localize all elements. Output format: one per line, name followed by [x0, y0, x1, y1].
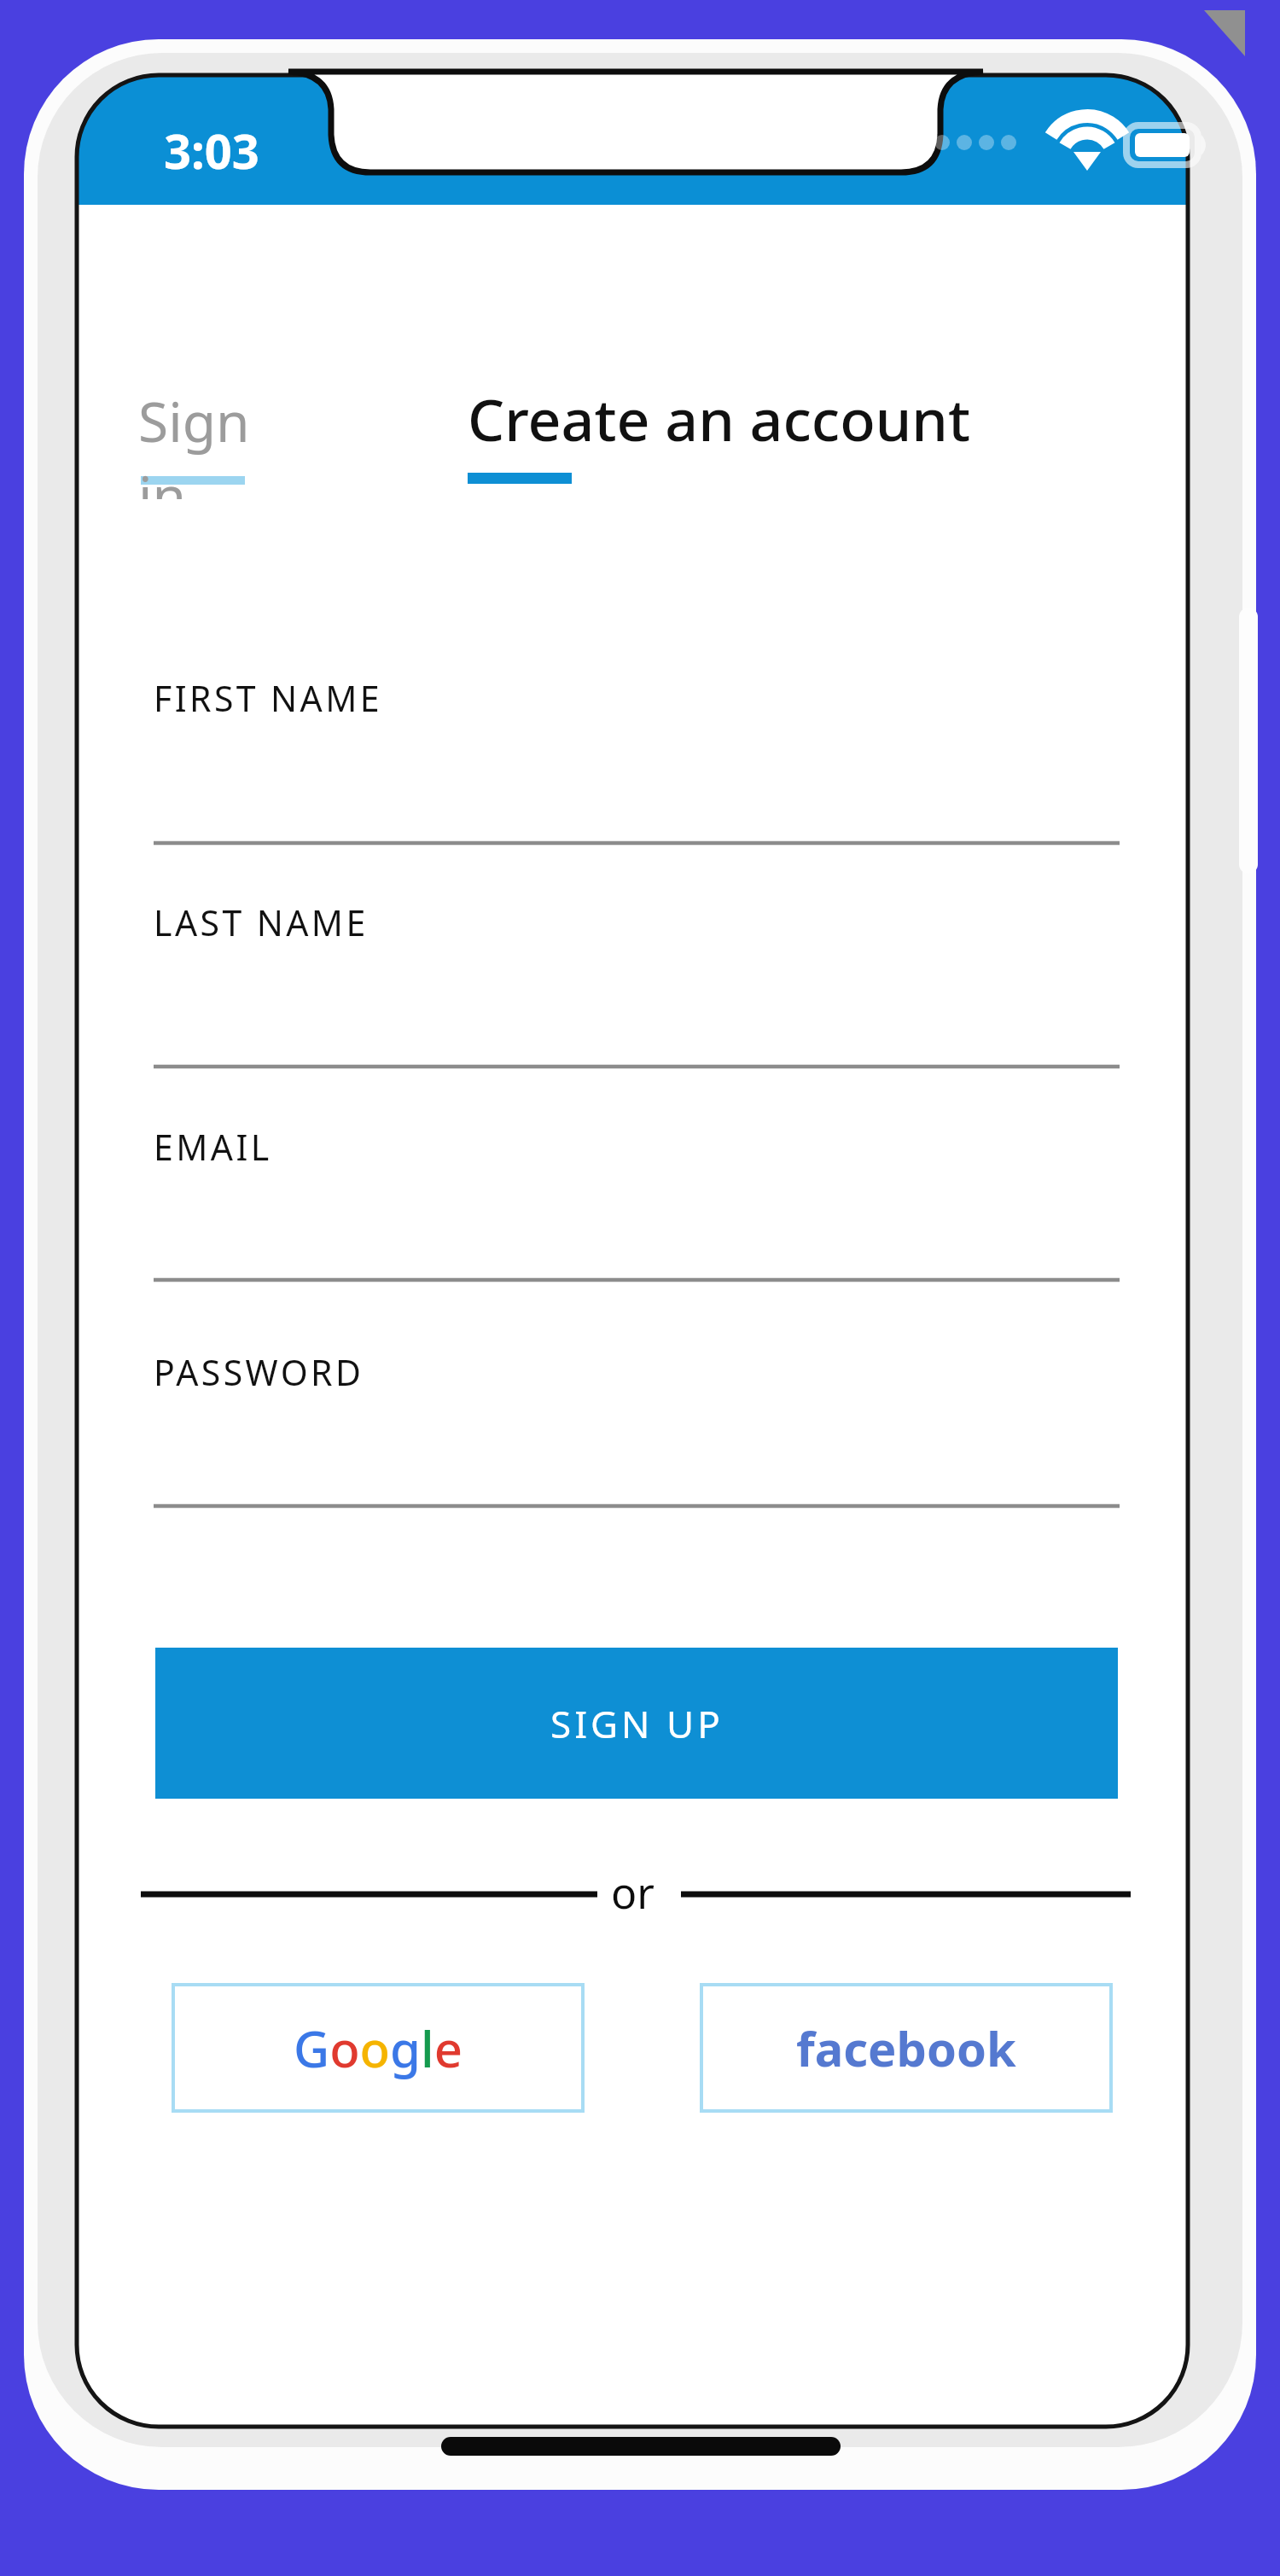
- button[interactable]: Sign in: [128, 374, 273, 489]
- button[interactable]: SIGN UP: [155, 1648, 1118, 1799]
- button[interactable]: Google: [173, 1985, 583, 2111]
- staticText: or: [611, 1864, 655, 1922]
- staticText: SIGN UP: [550, 1698, 724, 1749]
- staticText: 3:03: [164, 118, 259, 183]
- staticText: FIRST NAME: [154, 674, 382, 722]
- staticText: PASSWORD: [154, 1348, 364, 1396]
- button[interactable]: facebook: [701, 1985, 1111, 2111]
- staticText: facebook: [796, 2015, 1016, 2080]
- staticText: Sign in: [138, 384, 283, 499]
- staticText: LAST NAME: [154, 898, 369, 946]
- staticText: EMAIL: [154, 1123, 272, 1171]
- staticText: Create an account: [468, 379, 971, 458]
- staticText: Google: [294, 2015, 463, 2082]
- button[interactable]: Create an account: [461, 374, 1067, 489]
